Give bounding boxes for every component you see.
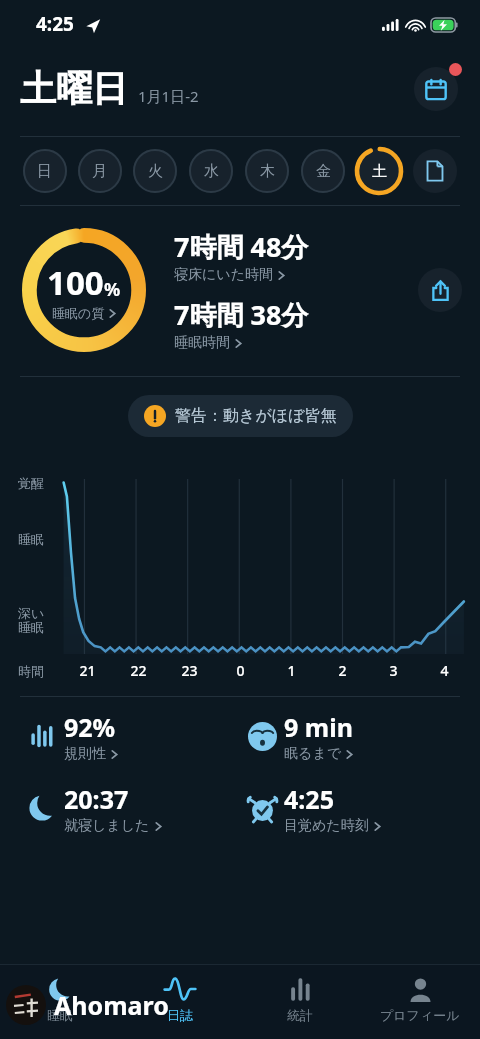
staticText: 警告：動きがほぼ皆無 bbox=[175, 406, 337, 426]
button[interactable]: Share bbox=[418, 268, 462, 312]
staticText: 1 bbox=[266, 661, 317, 680]
staticText: 3 bbox=[368, 661, 419, 680]
staticText: 睡眠の質 bbox=[52, 305, 105, 321]
staticText: 土曜日 bbox=[20, 66, 128, 111]
staticText: 金 bbox=[316, 162, 331, 181]
staticText: 9 min bbox=[284, 710, 353, 744]
staticText: 22 bbox=[113, 661, 164, 680]
staticText: 7時間 48分 bbox=[174, 228, 309, 265]
button[interactable]: 4:25 bbox=[240, 779, 460, 837]
staticText: % bbox=[104, 277, 121, 302]
staticText: 日誌 bbox=[167, 1007, 193, 1023]
button[interactable]: 警告：動きがほぼ皆無 bbox=[144, 405, 337, 427]
staticText: 睡眠時間 bbox=[174, 334, 230, 352]
button[interactable]: 92% bbox=[20, 707, 240, 765]
staticText: 4:25 bbox=[284, 782, 334, 816]
button[interactable]: 月 bbox=[72, 146, 127, 196]
button[interactable]: 金 bbox=[295, 146, 351, 196]
button[interactable]: 100 bbox=[20, 226, 148, 354]
staticText: 21 bbox=[62, 661, 113, 680]
staticText: Ahomaro bbox=[54, 988, 169, 1022]
button[interactable]: Calendar bbox=[414, 65, 460, 111]
staticText: 水 bbox=[204, 162, 219, 181]
staticText: 20:37 bbox=[64, 782, 129, 816]
staticText: 就寝しました bbox=[64, 817, 150, 835]
staticText: 時間 bbox=[18, 663, 62, 679]
staticText: 目覚めた時刻 bbox=[284, 817, 369, 835]
button[interactable]: 7時間 38分 bbox=[174, 296, 309, 352]
staticText: 100 bbox=[47, 260, 104, 305]
staticText: 月 bbox=[92, 162, 107, 181]
staticText: 4 bbox=[419, 661, 470, 680]
staticText: 23 bbox=[164, 661, 215, 680]
staticText: 覚醒 bbox=[18, 475, 44, 491]
button[interactable]: Notes bbox=[407, 146, 463, 196]
staticText: プロフィール bbox=[380, 1007, 460, 1023]
button[interactable]: 20:37 bbox=[20, 779, 240, 837]
staticText: 2 bbox=[317, 661, 368, 680]
button[interactable]: 土 bbox=[351, 146, 407, 196]
staticText: 4:25 bbox=[36, 11, 74, 37]
staticText: 0 bbox=[215, 661, 266, 680]
staticText: 眠るまで bbox=[284, 745, 341, 763]
staticText: 睡眠 bbox=[18, 531, 44, 547]
button[interactable]: 木 bbox=[239, 146, 295, 196]
staticText: 深い 睡眠 bbox=[18, 605, 45, 636]
button[interactable]: 睡眠 bbox=[0, 965, 120, 1023]
button[interactable]: 7時間 48分 bbox=[174, 228, 309, 284]
staticText: 火 bbox=[148, 162, 163, 181]
staticText: 木 bbox=[260, 162, 275, 181]
staticText: 1月1日-2 bbox=[138, 86, 199, 106]
staticText: 寝床にいた時間 bbox=[174, 266, 273, 284]
staticText: 睡眠 bbox=[47, 1007, 73, 1023]
staticText: 日 bbox=[37, 162, 52, 181]
button[interactable]: 日 bbox=[17, 146, 72, 196]
staticText: 7時間 38分 bbox=[174, 296, 309, 333]
staticText: 規則性 bbox=[64, 745, 106, 763]
button[interactable]: 統計 bbox=[240, 965, 360, 1023]
staticText: 統計 bbox=[287, 1007, 313, 1023]
button[interactable]: 9 min bbox=[240, 707, 460, 765]
button[interactable]: 水 bbox=[183, 146, 239, 196]
button[interactable]: プロフィール bbox=[360, 965, 480, 1023]
staticText: 土 bbox=[372, 162, 387, 181]
staticText: 92% bbox=[64, 710, 116, 744]
button[interactable]: 日誌 bbox=[120, 965, 240, 1023]
button[interactable]: 火 bbox=[127, 146, 183, 196]
